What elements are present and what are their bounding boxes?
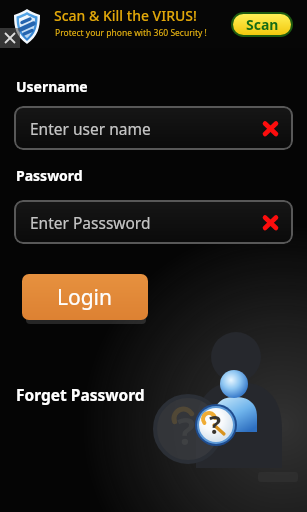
staticText: Scan & Kill the VIRUS! (54, 6, 197, 25)
staticText: ? (209, 407, 221, 441)
staticText: Password (16, 166, 83, 185)
staticText: Enter user name (30, 118, 151, 139)
staticText: Scan (246, 15, 279, 34)
button[interactable]: Enter user name (14, 106, 293, 150)
button[interactable] (0, 28, 20, 48)
button[interactable]: Forget Password (16, 384, 145, 405)
staticText: ? (177, 404, 196, 456)
button[interactable]: Scan & Kill the VIRUS! (0, 0, 307, 48)
staticText: Login (57, 283, 113, 312)
button[interactable]: Enter Passsword (14, 200, 293, 244)
button[interactable]: Login (22, 274, 148, 320)
staticText: Username (16, 77, 88, 96)
button[interactable]: Scan (233, 14, 291, 35)
staticText: Protect your phone with 360 Security ! (55, 27, 207, 39)
staticText: Enter Passsword (30, 212, 151, 233)
